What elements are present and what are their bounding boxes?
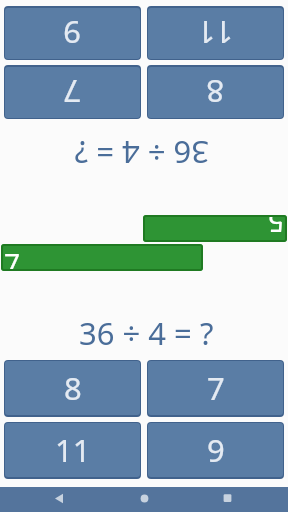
- button[interactable]: 11: [5, 423, 140, 477]
- button[interactable]: 9: [148, 423, 283, 477]
- staticText: 11: [55, 429, 91, 471]
- button[interactable]: 7: [5, 67, 140, 118]
- staticText: 9: [63, 12, 81, 54]
- button[interactable]: 8: [148, 67, 283, 118]
- button[interactable]: [132, 487, 157, 512]
- staticText: 36 ÷ 4 = ?: [79, 312, 214, 354]
- staticText: 7: [207, 367, 225, 409]
- button[interactable]: 7: [148, 361, 283, 415]
- button[interactable]: 8: [5, 361, 140, 415]
- staticText: 8: [206, 71, 224, 113]
- staticText: 36 ÷ 4 = ?: [74, 132, 209, 174]
- button[interactable]: [47, 487, 72, 512]
- staticText: 7: [63, 71, 81, 113]
- staticText: 7: [4, 244, 21, 271]
- staticText: 11: [197, 12, 233, 54]
- button[interactable]: [215, 487, 240, 512]
- button[interactable]: 9: [5, 8, 140, 59]
- staticText: 5: [267, 215, 284, 242]
- staticText: 8: [64, 367, 82, 409]
- button[interactable]: 11: [148, 8, 283, 59]
- staticText: 9: [207, 429, 225, 471]
